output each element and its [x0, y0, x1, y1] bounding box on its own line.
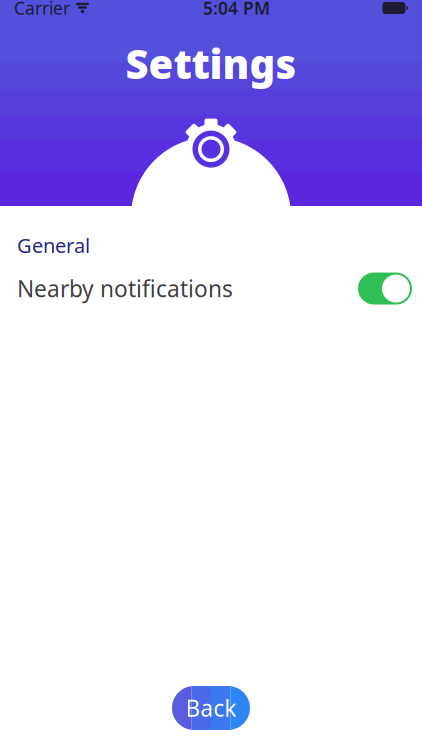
button[interactable]: Nearby notifications [0, 267, 422, 311]
button[interactable]: Back [172, 686, 250, 730]
staticText: Nearby notifications [17, 273, 233, 304]
staticText: Back [185, 693, 236, 723]
staticText: 5:04 PM [203, 0, 270, 19]
staticText: Settings [125, 37, 296, 90]
staticText: Carrier [14, 0, 70, 19]
staticText: General [17, 232, 90, 259]
